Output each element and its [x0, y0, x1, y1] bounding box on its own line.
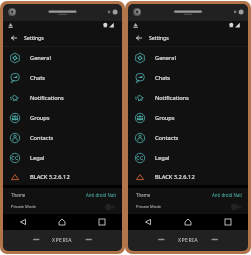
staticText: Legal — [155, 154, 170, 162]
staticText: Private Mode — [136, 204, 161, 209]
button[interactable]: Back — [128, 214, 168, 230]
button[interactable]: Groups — [3, 108, 122, 128]
button[interactable]: Legal — [3, 148, 122, 168]
staticText: BLACK 3.2.6.12 — [155, 173, 195, 181]
staticText: Settings — [24, 34, 44, 41]
staticText: General — [155, 54, 176, 62]
staticText: XPERIA — [52, 236, 73, 243]
button[interactable]: Theme — [3, 188, 122, 200]
staticText: Anti droid Nati — [212, 192, 242, 198]
staticText: Legal — [30, 154, 45, 162]
staticText: Groups — [30, 114, 50, 122]
staticText: BLACK 3.2.6.12 — [30, 173, 70, 181]
button[interactable]: General — [128, 48, 248, 68]
staticText: Notifications — [30, 94, 64, 102]
button[interactable]: Chats — [128, 68, 248, 88]
button[interactable]: Contacts — [3, 128, 122, 148]
button[interactable]: General — [3, 48, 122, 68]
staticText: XPERIA — [178, 236, 199, 243]
other: Private Mode toggle — [230, 203, 243, 211]
staticText: Theme — [136, 192, 151, 198]
staticText: Theme — [11, 192, 26, 198]
staticText: Contacts — [30, 134, 54, 142]
button[interactable]: Private Mode — [3, 200, 122, 214]
button[interactable]: Back — [3, 214, 42, 230]
staticText: Groups — [155, 114, 175, 122]
staticText: Private Mode — [11, 204, 36, 209]
button[interactable]: Legal — [128, 148, 248, 168]
button[interactable]: BLACK 3.2.6.12 — [128, 168, 248, 185]
staticText: Notifications — [155, 94, 189, 102]
button[interactable]: Private Mode — [128, 200, 248, 214]
button[interactable]: BLACK 3.2.6.12 — [3, 168, 122, 185]
staticText: Contacts — [155, 134, 179, 142]
staticText: Anti droid Nati — [86, 192, 116, 198]
other: Back — [136, 35, 142, 41]
button[interactable]: Recents — [208, 214, 248, 230]
button[interactable]: Groups — [128, 108, 248, 128]
staticText: Chats — [155, 74, 171, 82]
staticText: Settings — [149, 34, 169, 41]
button[interactable]: Notifications — [128, 88, 248, 108]
other: Private Mode toggle — [104, 203, 117, 211]
button[interactable]: Recents — [82, 214, 122, 230]
button[interactable]: Contacts — [128, 128, 248, 148]
button[interactable]: Notifications — [3, 88, 122, 108]
staticText: Chats — [30, 74, 46, 82]
button[interactable]: Theme — [128, 188, 248, 200]
button[interactable]: Home — [168, 214, 208, 230]
other: Back — [11, 35, 17, 41]
button[interactable]: Home — [42, 214, 82, 230]
button[interactable]: Back — [3, 29, 122, 46]
staticText: General — [30, 54, 51, 62]
button[interactable]: Back — [128, 29, 248, 46]
button[interactable]: Chats — [3, 68, 122, 88]
